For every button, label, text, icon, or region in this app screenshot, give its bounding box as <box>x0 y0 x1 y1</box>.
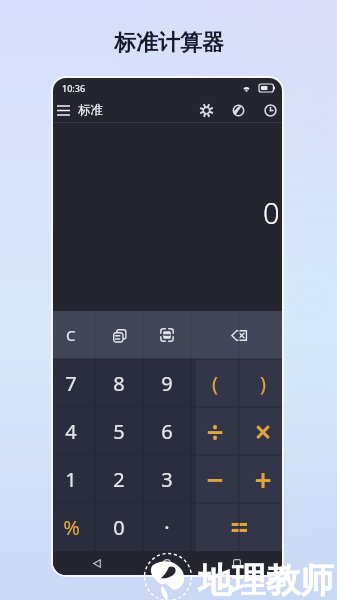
staticText: = <box>230 505 249 549</box>
button[interactable]: · <box>143 503 191 551</box>
staticText: % <box>63 514 80 541</box>
staticText: 标准 <box>78 102 103 118</box>
staticText: 0 <box>113 514 125 541</box>
staticText: − <box>206 459 224 500</box>
button[interactable]: − <box>191 455 239 503</box>
button[interactable]: Home <box>155 551 179 575</box>
staticText: 5 <box>113 418 125 445</box>
button[interactable]: ) <box>239 359 282 407</box>
button[interactable]: 3 <box>143 455 191 503</box>
button[interactable]: C <box>53 311 95 359</box>
button[interactable]: Back <box>85 551 109 575</box>
staticText: 8 <box>113 370 125 397</box>
staticText: 2 <box>113 466 125 493</box>
staticText: 3 <box>161 466 173 493</box>
button[interactable]: 2 <box>95 455 143 503</box>
staticText: ( <box>212 370 218 397</box>
button[interactable]: 0 <box>95 503 143 551</box>
staticText: 7 <box>65 370 77 397</box>
staticText: 1 <box>65 466 77 493</box>
staticText: 地理教师 <box>198 559 334 600</box>
button[interactable]: Copy <box>95 311 143 359</box>
staticText: ÷ <box>206 411 224 452</box>
staticText: 0 <box>263 193 280 232</box>
button[interactable]: ( <box>191 359 239 407</box>
button[interactable]: 4 <box>53 407 95 455</box>
staticText: ) <box>260 370 266 397</box>
button[interactable]: 8 <box>95 359 143 407</box>
button[interactable]: Scan <box>143 311 191 359</box>
staticText: 4 <box>65 418 77 445</box>
staticText: 9 <box>161 370 173 397</box>
button[interactable]: % <box>53 503 95 551</box>
staticText: C <box>66 325 76 345</box>
button[interactable]: Backspace <box>191 311 282 359</box>
button[interactable]: History <box>250 97 282 123</box>
button[interactable]: 5 <box>95 407 143 455</box>
button[interactable]: Brightness <box>186 97 218 123</box>
button[interactable]: 7 <box>53 359 95 407</box>
staticText: 10:36 <box>62 82 86 94</box>
button[interactable]: Recents <box>225 551 249 575</box>
button[interactable]: + <box>239 455 282 503</box>
button[interactable]: 6 <box>143 407 191 455</box>
staticText: 标准计算器 <box>114 29 224 57</box>
button[interactable]: × <box>239 407 282 455</box>
button[interactable]: 1 <box>53 455 95 503</box>
button[interactable]: Theme <box>218 97 250 123</box>
button[interactable]: 9 <box>143 359 191 407</box>
button[interactable]: ÷ <box>191 407 239 455</box>
staticText: · <box>164 514 170 541</box>
staticText: + <box>254 459 272 500</box>
staticText: 6 <box>161 418 173 445</box>
button[interactable]: = <box>191 503 282 551</box>
staticText: × <box>254 411 272 452</box>
button[interactable]: Menu <box>54 98 73 122</box>
